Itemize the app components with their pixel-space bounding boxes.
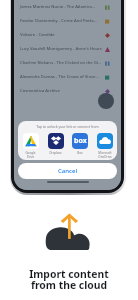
staticText: box — [74, 136, 87, 146]
button[interactable]: Microsoft OneDrive — [93, 133, 116, 159]
staticText: Lucy Vauxhill Montgomery - Anne's Hours — [20, 46, 105, 52]
button[interactable]: Cancel — [18, 163, 117, 179]
staticText: Alexandre Dumas - The Crows of Vince... — [20, 74, 105, 80]
button[interactable]: Alexandre Dumas - The Crows of Vince... — [14, 70, 121, 84]
staticText: Google Drive — [25, 151, 36, 159]
button[interactable]: Lucy Vauxhill Montgomery - Anne's Hours — [14, 42, 121, 56]
staticText: James Martinez Nunio - The Atlantics... — [20, 4, 105, 10]
staticText: Box — [77, 151, 83, 155]
staticText: Charline Nickans - The Clicked on the Gl… — [20, 60, 105, 66]
staticText: Cosmonitica Archive — [20, 88, 105, 94]
button[interactable]: Dropbox — [44, 133, 67, 155]
button[interactable]: Charline Nickans - The Clicked on the Gl… — [14, 56, 121, 70]
staticText: Microsoft OneDrive — [98, 151, 112, 159]
button[interactable]: Google Drive — [19, 133, 42, 159]
button[interactable]: Fandor Diastemsky - Crime And Parks... — [14, 14, 121, 28]
staticText: Tap to unlock your link or connect from — [18, 124, 117, 129]
button[interactable]: James Martinez Nunio - The Atlantics... — [14, 0, 121, 14]
staticText: Fandor Diastemsky - Crime And Parks... — [20, 18, 105, 24]
staticText: Voltaire - Candide — [20, 32, 105, 38]
button[interactable]: box — [68, 133, 91, 155]
staticText: Import content from the cloud — [0, 267, 138, 292]
button[interactable]: Add — [98, 93, 114, 109]
button[interactable]: Voltaire - Candide — [14, 28, 121, 42]
staticText: Dropbox — [49, 151, 62, 155]
staticText: Cancel — [58, 167, 78, 175]
button[interactable]: Cosmonitica Archive — [14, 84, 121, 98]
